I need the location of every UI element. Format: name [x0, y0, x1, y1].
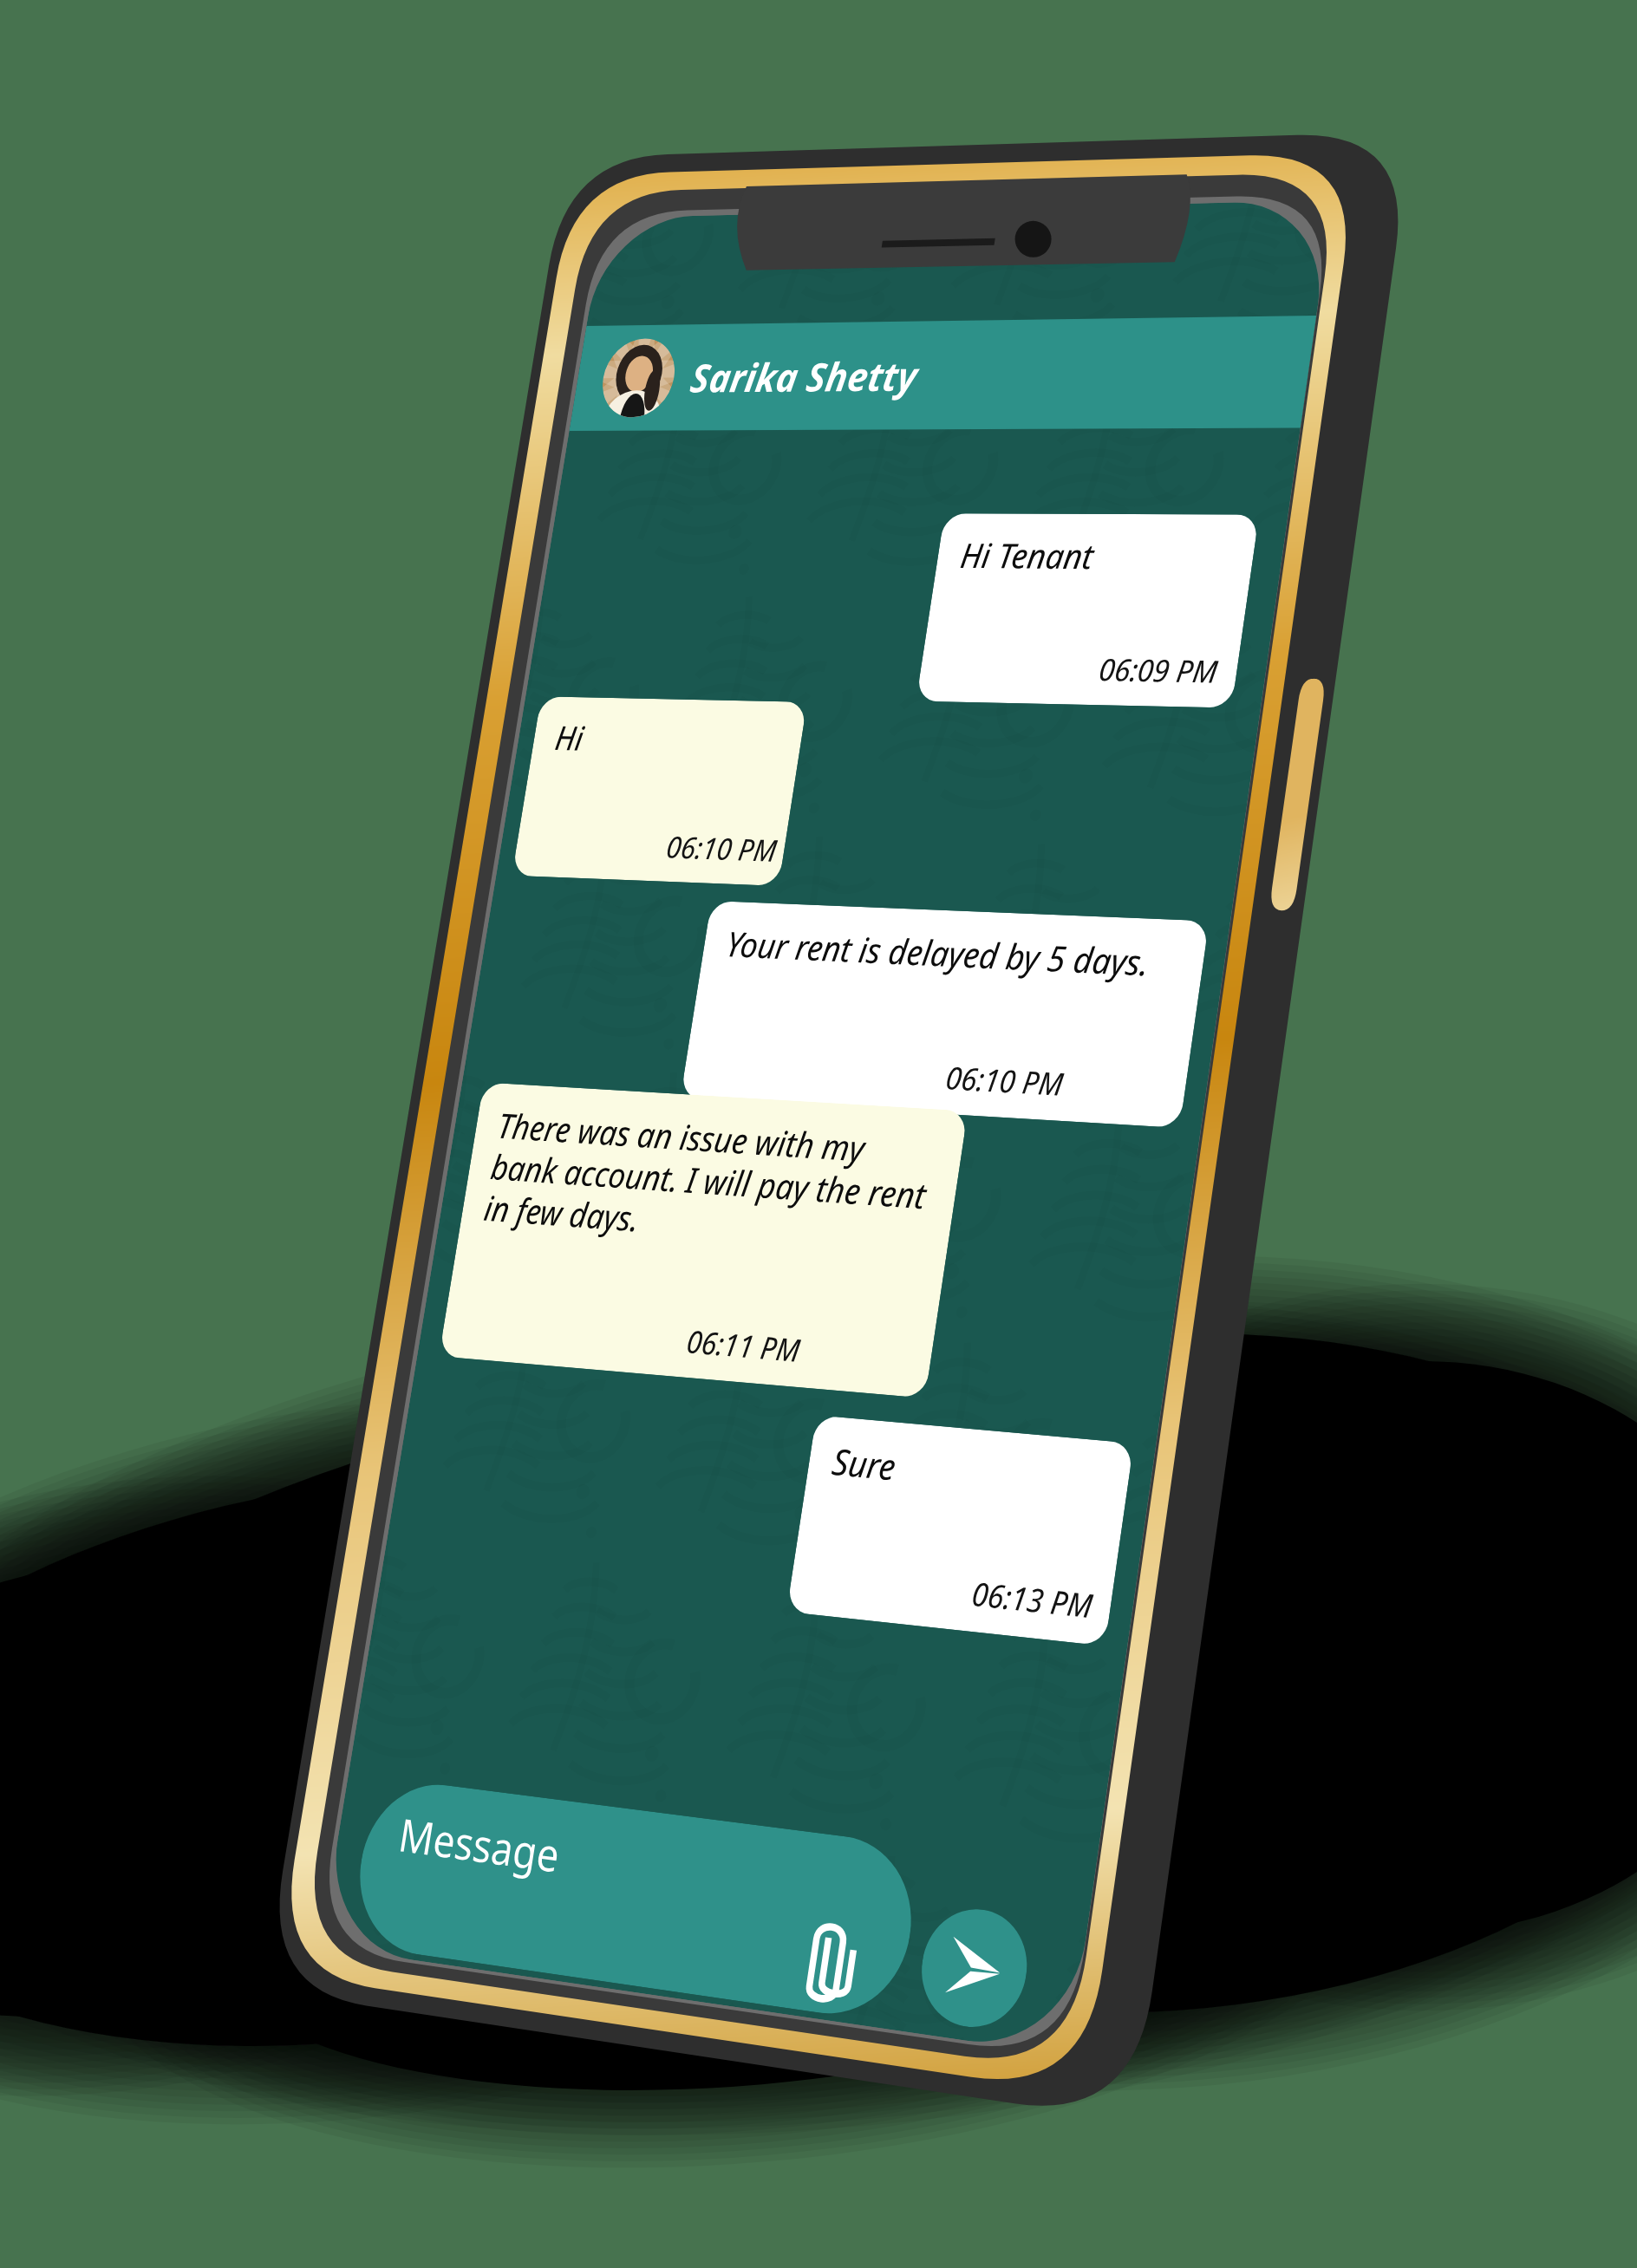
button[interactable]: There was an issue with my bank account.…	[439, 1082, 968, 1398]
staticText: Message	[395, 1803, 564, 1886]
staticText: There was an issue with my bank account.…	[481, 1102, 937, 1262]
staticText: 06:10 PM	[664, 827, 780, 871]
staticText: 06:09 PM	[1096, 649, 1220, 692]
button[interactable]: Sure	[786, 1415, 1134, 1646]
button[interactable]: Hi Tenant	[916, 513, 1259, 708]
staticText: 06:11 PM	[684, 1320, 803, 1371]
button[interactable]: Sarika Shetty	[569, 316, 1316, 431]
staticText: Your rent is delayed by 5 days.	[723, 920, 1153, 986]
staticText: Sure	[829, 1436, 900, 1491]
staticText: Hi Tenant	[958, 532, 1097, 579]
staticText: 06:13 PM	[969, 1572, 1096, 1628]
button[interactable]: Your rent is delayed by 5 days.	[680, 901, 1209, 1128]
button[interactable]: Attach file	[792, 1915, 880, 2012]
staticText: 06:10 PM	[943, 1056, 1066, 1105]
staticText: Hi	[552, 714, 587, 760]
staticText: Sarika Shetty	[687, 349, 922, 404]
button[interactable]: Message	[348, 1776, 923, 2024]
button[interactable]: Hi	[512, 696, 807, 886]
button[interactable]: Send	[914, 1903, 1035, 2034]
